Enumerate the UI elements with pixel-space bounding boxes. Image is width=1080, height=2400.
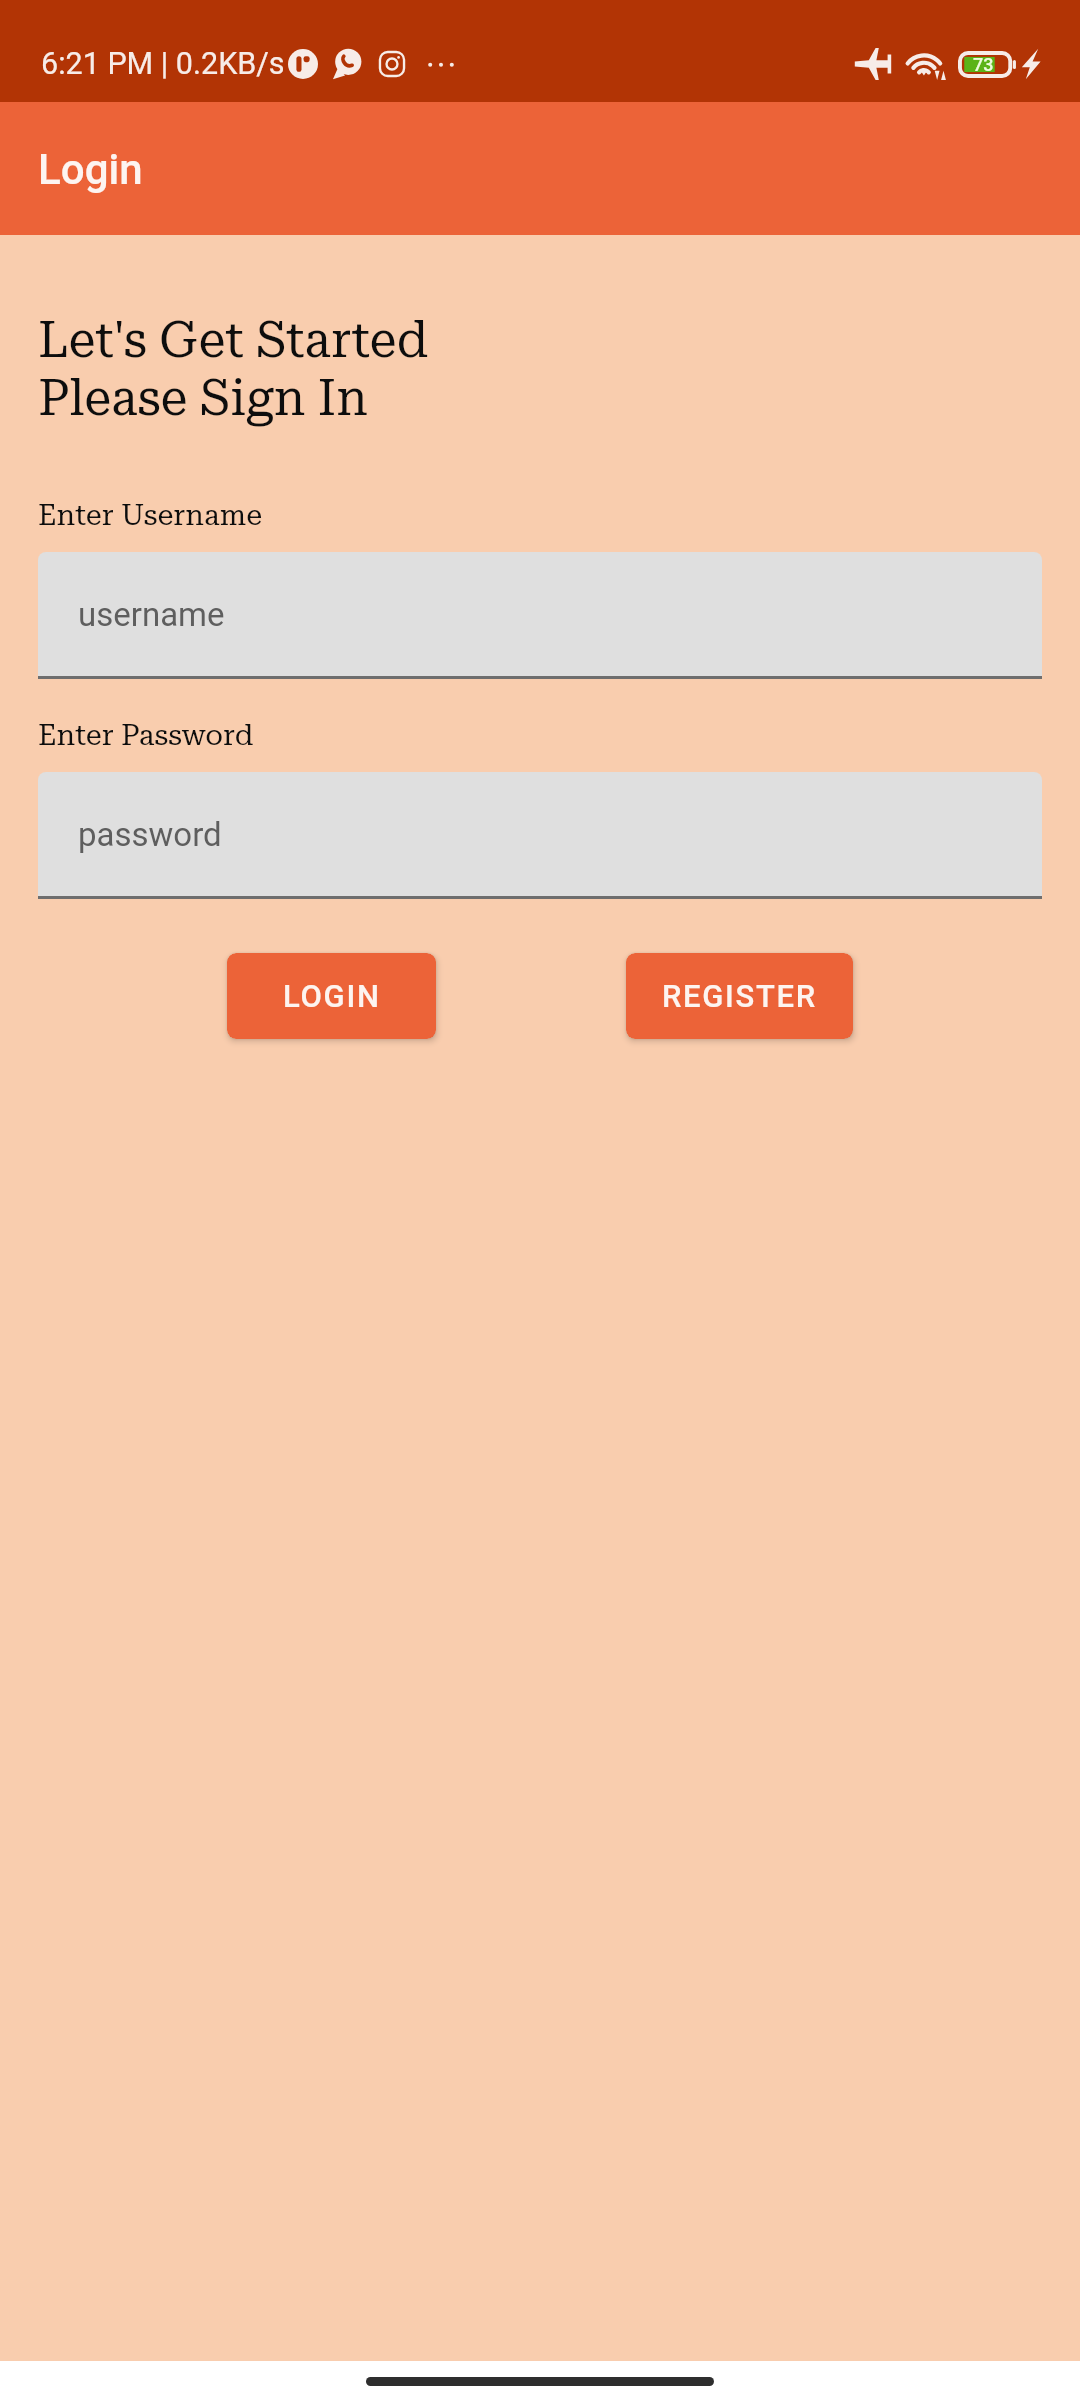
staticText: REGISTER: [662, 978, 817, 1014]
other: Home: [366, 2377, 714, 2386]
other: Charging: [1021, 48, 1041, 80]
button[interactable]: password: [38, 772, 1042, 899]
staticText: LOGIN: [283, 978, 381, 1014]
button[interactable]: REGISTER: [626, 953, 853, 1039]
other: Wi-Fi: [905, 48, 949, 80]
button[interactable]: LOGIN: [227, 953, 436, 1039]
other: Airplane mode: [854, 48, 894, 80]
staticText: Login: [38, 145, 143, 194]
staticText: 6:21 PM | 0.2KB/s: [41, 46, 285, 82]
staticText: username: [78, 595, 225, 634]
staticText: Enter Password: [38, 718, 254, 752]
staticText: 73: [973, 54, 994, 75]
button[interactable]: username: [38, 552, 1042, 679]
staticText: Enter Username: [38, 498, 263, 532]
staticText: password: [78, 815, 222, 854]
staticText: Let's Get Started Please Sign In: [38, 311, 429, 427]
